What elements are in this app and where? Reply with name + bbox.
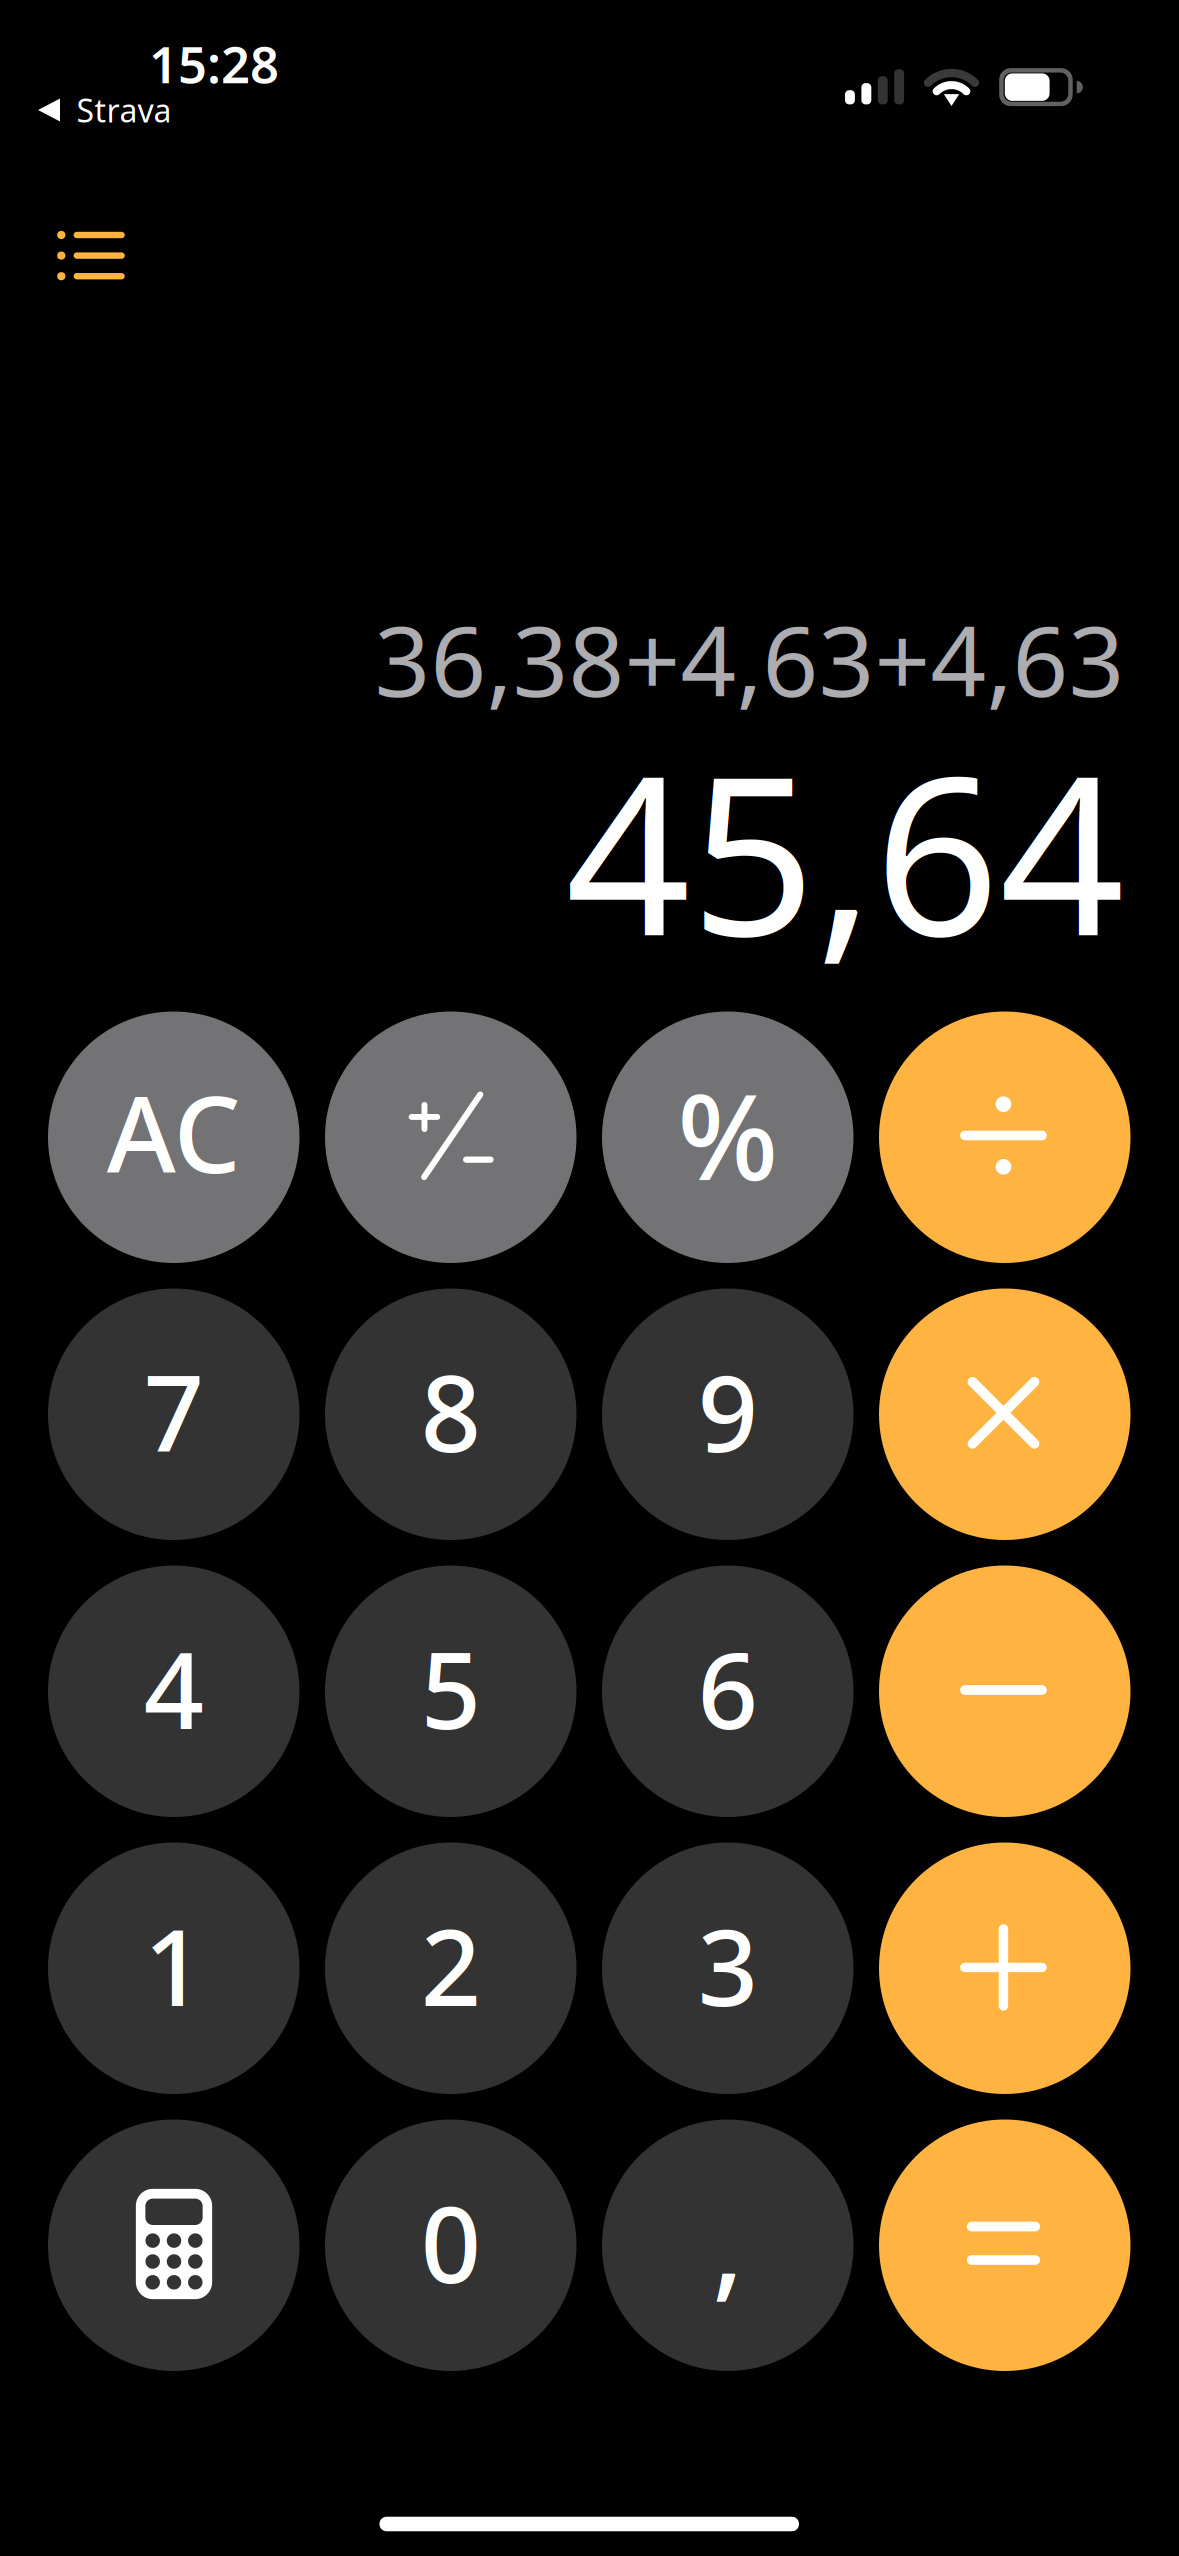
button[interactable]: Minus bbox=[879, 1565, 1130, 1817]
button[interactable]: 5 bbox=[325, 1565, 576, 1817]
button[interactable]: 3 bbox=[602, 1842, 853, 2094]
staticText: 45,64 bbox=[565, 706, 1124, 996]
staticText: AC bbox=[107, 1062, 241, 1202]
staticText: 5 bbox=[421, 1618, 481, 1758]
staticText: % bbox=[677, 1055, 778, 1213]
button[interactable]: 4 bbox=[48, 1565, 299, 1817]
button[interactable]: 8 bbox=[325, 1288, 576, 1540]
button[interactable]: Divide bbox=[879, 1011, 1130, 1263]
button[interactable]: History bbox=[25, 190, 157, 322]
staticText: 15:28 bbox=[149, 30, 279, 97]
button[interactable]: 6 bbox=[602, 1565, 853, 1817]
button[interactable]: Strava bbox=[38, 84, 198, 136]
staticText: Strava bbox=[76, 89, 171, 131]
button[interactable]: Multiply bbox=[879, 1288, 1130, 1540]
staticText: , bbox=[712, 2166, 743, 2318]
staticText: 6 bbox=[698, 1618, 758, 1758]
button[interactable]: 2 bbox=[325, 1842, 576, 2094]
button[interactable]: Plus bbox=[879, 1842, 1130, 2094]
button[interactable]: 0 bbox=[325, 2119, 576, 2371]
staticText: 3 bbox=[698, 1895, 758, 2035]
staticText: 2 bbox=[421, 1895, 481, 2035]
staticText: 4 bbox=[144, 1618, 204, 1758]
button[interactable]: 7 bbox=[48, 1288, 299, 1540]
button[interactable]: , bbox=[602, 2119, 853, 2371]
staticText: 7 bbox=[144, 1341, 204, 1481]
staticText: 9 bbox=[698, 1341, 758, 1481]
staticText: 8 bbox=[421, 1341, 481, 1481]
button[interactable]: 1 bbox=[48, 1842, 299, 2094]
button[interactable]: AC bbox=[48, 1011, 299, 1263]
button[interactable]: Equals bbox=[879, 2119, 1130, 2371]
button[interactable]: 9 bbox=[602, 1288, 853, 1540]
staticText: 1 bbox=[144, 1895, 204, 2035]
button[interactable]: Plus minus bbox=[325, 1011, 576, 1263]
staticText: 0 bbox=[421, 2172, 481, 2312]
button[interactable]: Calculator bbox=[48, 2119, 299, 2371]
staticText: 36,38+4,63+4,63 bbox=[374, 594, 1124, 724]
button[interactable]: % bbox=[602, 1011, 853, 1263]
